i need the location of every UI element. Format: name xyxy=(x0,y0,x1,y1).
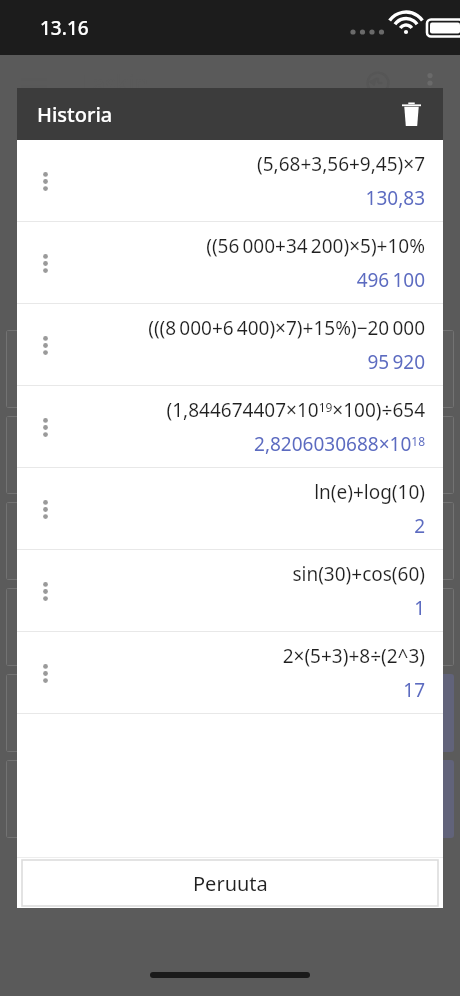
staticText: 7 xyxy=(278,693,296,734)
button[interactable]: Menu xyxy=(10,59,58,107)
staticText: ((56 000+34 200)×5)+10% xyxy=(206,233,425,259)
button[interactable]: Entry options xyxy=(25,571,65,611)
staticText: sin(30)+cos(60) xyxy=(292,561,425,587)
button[interactable]: Entry options xyxy=(25,653,65,693)
staticText: 1 xyxy=(414,595,425,621)
staticText: 2×(5+3)+8÷(2^3) xyxy=(282,643,425,669)
staticText: (5,68+3,56+9,45)×7 xyxy=(257,151,425,177)
button[interactable]: Peruuta xyxy=(22,860,438,906)
button[interactable]: Entry options xyxy=(25,161,65,201)
button[interactable]: Entry options xyxy=(17,222,443,303)
staticText: 17 xyxy=(403,677,425,703)
button[interactable]: More options xyxy=(408,61,452,105)
staticText: 2 xyxy=(414,513,425,539)
button[interactable]: Entry options xyxy=(25,325,65,365)
button[interactable]: Entry options xyxy=(17,140,443,221)
button[interactable]: Entry options xyxy=(25,407,65,447)
staticText: 2,8206030688×1018 xyxy=(254,431,425,457)
staticText: 130,83 xyxy=(365,185,425,211)
button[interactable]: Entry options xyxy=(25,243,65,283)
staticText: 00 xyxy=(156,693,191,734)
staticText: Peruuta xyxy=(193,870,268,897)
button[interactable]: Entry options xyxy=(17,386,443,467)
staticText: 8 xyxy=(50,693,68,734)
staticText: 496 100 xyxy=(356,267,425,293)
button[interactable]: Clear history xyxy=(389,92,433,136)
button[interactable]: Entry options xyxy=(17,304,443,385)
staticText: 13.16 xyxy=(40,15,89,41)
staticText: Historia xyxy=(37,101,113,128)
button[interactable]: History xyxy=(354,59,402,107)
button[interactable]: Entry options xyxy=(25,489,65,529)
staticText: (1,844674407×1019×100)÷654 xyxy=(166,397,425,423)
button[interactable]: Entry options xyxy=(17,550,443,631)
staticText: 95 920 xyxy=(367,349,425,375)
button[interactable]: Entry options xyxy=(17,468,443,549)
staticText: Laskin xyxy=(80,67,149,98)
button[interactable]: Entry options xyxy=(17,632,443,713)
staticText: (((8 000+6 400)×7)+15%)−20 000 xyxy=(148,315,425,341)
staticText: ln(e)+log(10) xyxy=(314,479,425,505)
